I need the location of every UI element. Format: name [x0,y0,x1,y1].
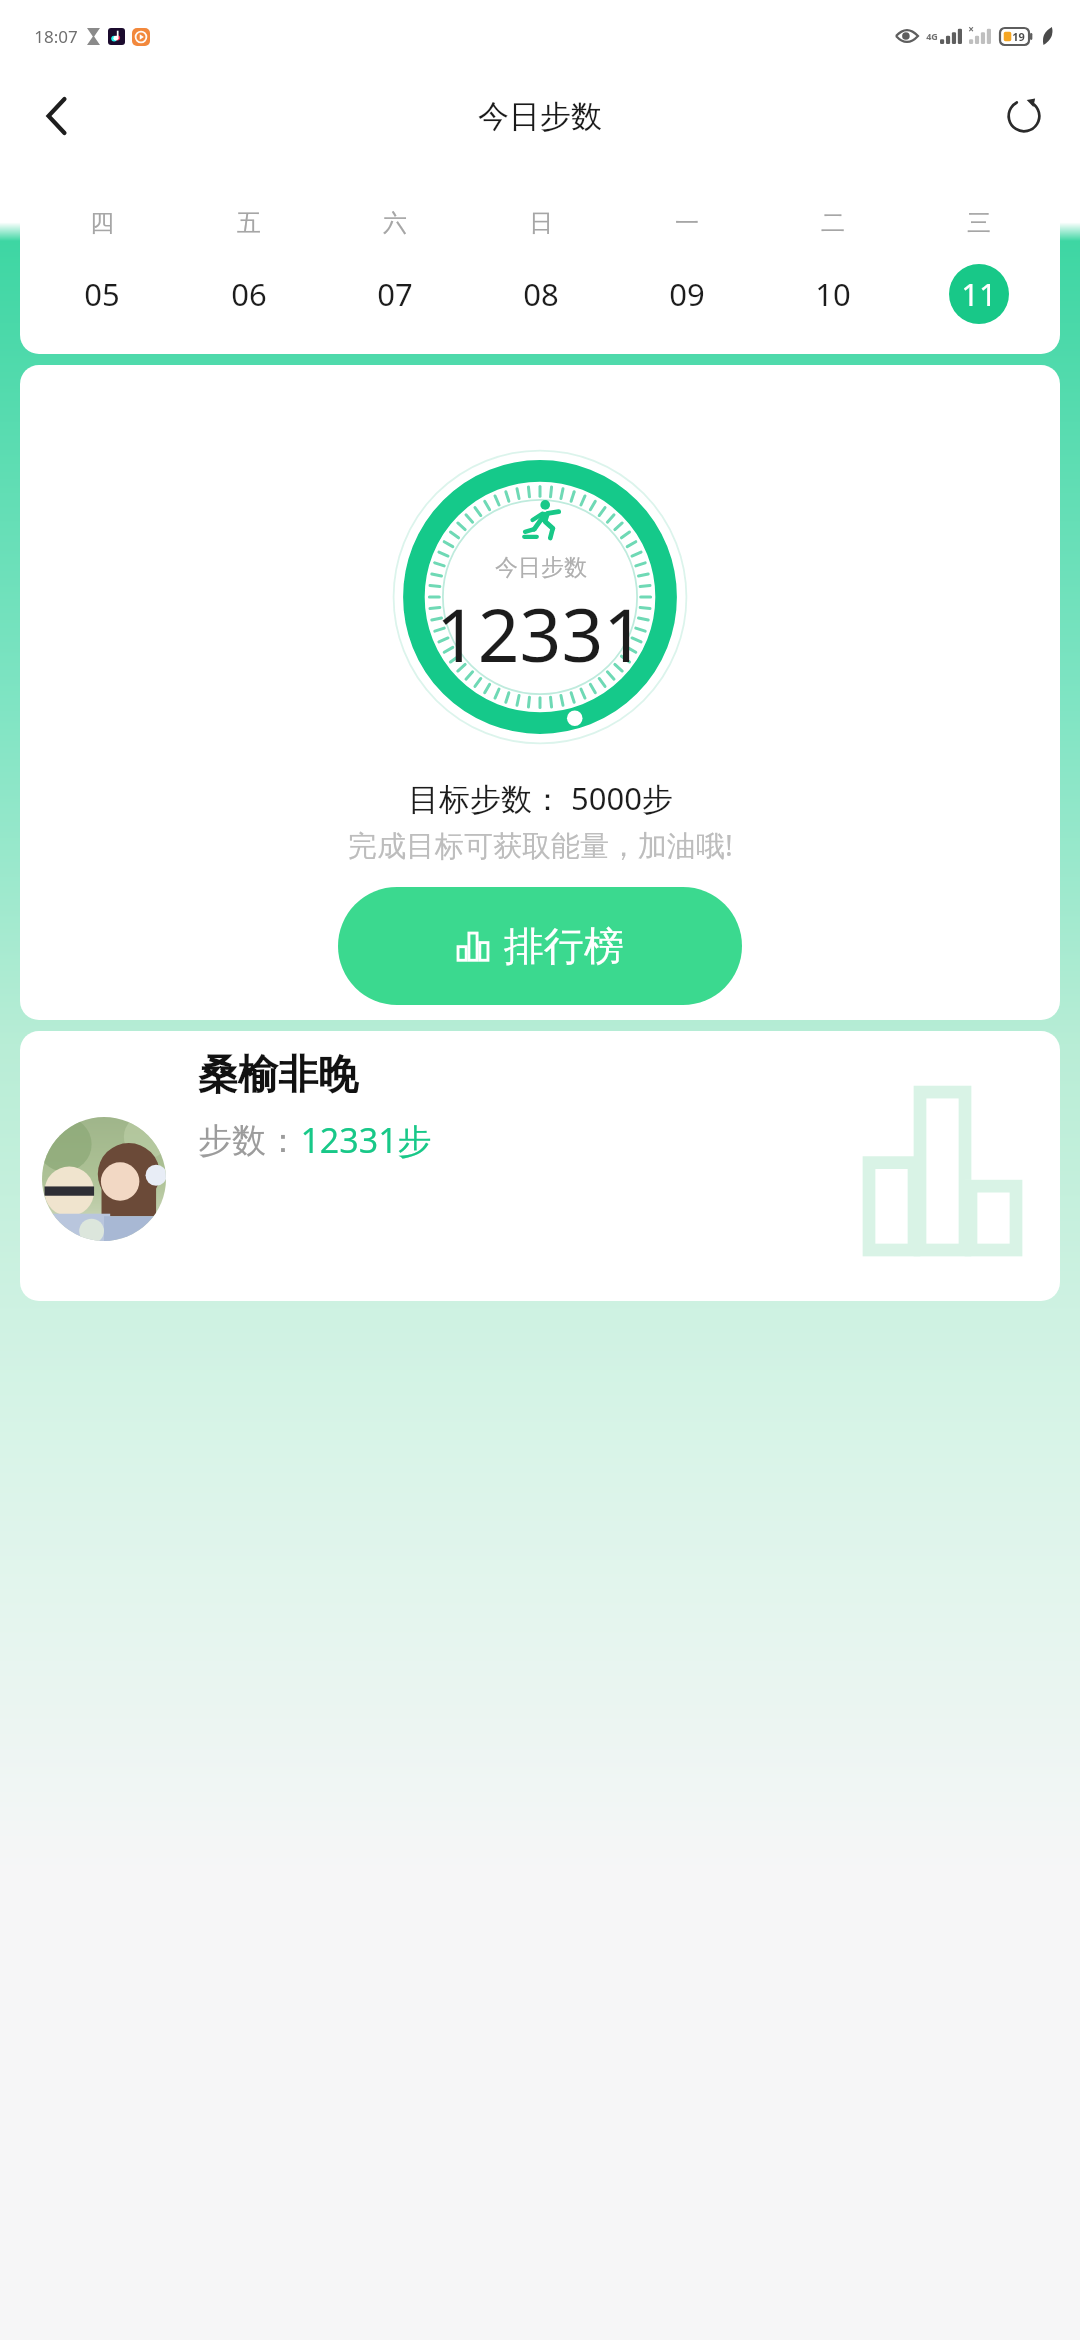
staticText: 4G [926,30,938,42]
button[interactable]: 桑榆非晚 [20,1031,1060,1301]
button[interactable]: 10 [803,264,863,324]
staticText: × [968,22,974,36]
staticText: 12331 [436,584,645,683]
staticText: 18:07 [34,25,78,48]
staticText: 四 [90,208,114,238]
staticText: 六 [383,208,407,238]
staticText: 完成目标可获取能量，加油哦! [348,825,733,865]
staticText: 11 [961,273,997,315]
button[interactable]: 排行榜 [338,887,742,1005]
staticText: 06 [231,273,267,315]
button[interactable]: 07 [365,264,425,324]
staticText: 12331步 [300,1117,432,1163]
button[interactable]: 09 [657,264,717,324]
staticText: 08 [523,273,559,315]
staticText: 10 [815,273,851,315]
button[interactable]: 08 [511,264,571,324]
button[interactable]: 06 [219,264,279,324]
staticText: 19 [1012,29,1025,44]
staticText: 目标步数： 5000步 [408,777,673,819]
staticText: 一 [675,208,699,238]
staticText: 五 [237,208,261,238]
staticText: 二 [821,208,845,238]
staticText: 日 [529,208,553,238]
button[interactable]: 05 [72,264,132,324]
staticText: 步数： [198,1119,300,1162]
button[interactable]: Back [20,80,92,152]
button[interactable]: Refresh [988,80,1060,152]
staticText: 三 [967,208,991,238]
staticText: 桑榆非晚 [198,1049,358,1099]
staticText: 05 [84,273,120,315]
staticText: 09 [669,273,705,315]
staticText: 今日步数 [495,553,587,582]
button[interactable]: 11 [949,264,1009,324]
staticText: 07 [377,273,413,315]
staticText: 排行榜 [504,921,624,971]
staticText: 今日步数 [478,97,602,136]
